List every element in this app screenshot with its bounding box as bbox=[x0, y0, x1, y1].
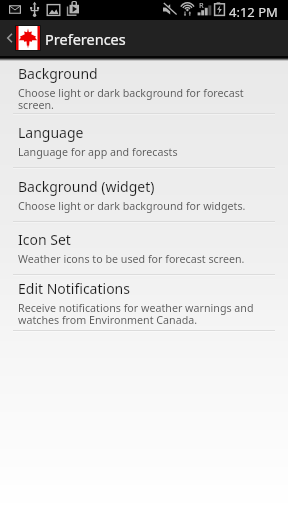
staticText: Background bbox=[18, 64, 98, 83]
button[interactable]: Language bbox=[0, 115, 288, 167]
button[interactable]: Background bbox=[0, 64, 288, 113]
staticText: Choose light or dark background for widg… bbox=[18, 199, 246, 214]
staticText: Receive notifications for weather warnin… bbox=[18, 301, 274, 328]
staticText: Choose light or dark background for fore… bbox=[18, 86, 274, 113]
staticText: Icon Set bbox=[18, 230, 71, 249]
staticText: Weather icons to be used for forecast sc… bbox=[18, 252, 245, 267]
staticText: R bbox=[199, 0, 204, 10]
button[interactable]: Background (widget) bbox=[0, 169, 288, 221]
staticText: 4:12 PM bbox=[229, 3, 278, 21]
staticText: Preferences bbox=[45, 29, 126, 49]
button[interactable]: Navigate up bbox=[0, 28, 20, 48]
staticText: Edit Notifications bbox=[18, 279, 130, 298]
button[interactable]: Edit Notifications bbox=[0, 276, 288, 330]
staticText: Language for app and forecasts bbox=[18, 145, 178, 160]
button[interactable]: Icon Set bbox=[0, 223, 288, 274]
staticText: Language bbox=[18, 123, 84, 142]
staticText: Background (widget) bbox=[18, 177, 155, 196]
